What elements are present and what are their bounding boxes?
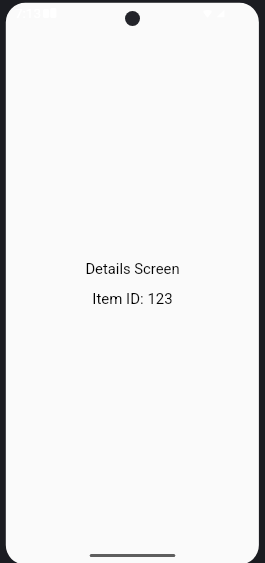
staticText: 7:13 — [15, 5, 42, 21]
staticText: Details Screen — [85, 260, 180, 277]
staticText: Item ID: 123 — [92, 290, 173, 308]
